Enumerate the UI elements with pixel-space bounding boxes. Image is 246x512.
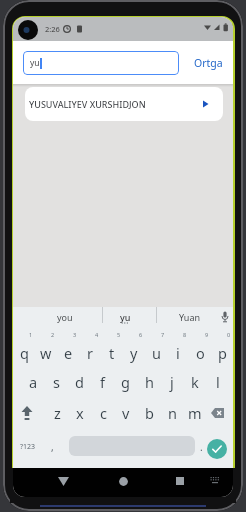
button[interactable]: q [13,339,35,366]
button[interactable]: p [211,339,233,366]
button[interactable]: you [33,309,96,324]
staticText: a [29,372,38,392]
button[interactable] [113,471,133,491]
button[interactable]: x [69,399,91,426]
staticText: 7 [161,331,165,338]
staticText: f [100,372,105,392]
staticText: p [218,343,227,363]
staticText: z [54,403,61,423]
staticText: o [196,343,205,363]
button[interactable]: u [145,339,167,366]
staticText: yu [30,57,40,69]
button[interactable]: e [57,339,79,366]
staticText: q [20,343,29,363]
button[interactable]: v [115,399,137,426]
button[interactable]: a [22,368,44,395]
button[interactable]: c [92,399,114,426]
staticText: s [53,372,60,392]
staticText: e [64,343,73,363]
button[interactable] [170,471,190,491]
staticText: m [188,403,202,423]
button[interactable]: i [167,339,189,366]
button[interactable] [53,471,73,491]
button[interactable]: . [195,433,207,460]
button[interactable]: ?123 [15,433,41,460]
button[interactable]: j [161,368,183,395]
staticText: ?123 [20,442,36,452]
button[interactable]: s [45,368,67,395]
staticText: you [57,311,73,323]
button[interactable]: k [184,368,206,395]
staticText: i [176,343,180,363]
staticText: w [40,343,52,363]
button[interactable]: r [79,339,101,366]
button[interactable]: o [189,339,211,366]
staticText: y [130,343,138,363]
staticText: c [100,403,107,423]
staticText: b [145,403,154,423]
staticText: k [191,372,199,392]
staticText: 5 [117,331,121,338]
button[interactable]: yu [105,309,145,324]
staticText: 2 [51,331,55,338]
staticText: v [122,403,130,423]
staticText: h [145,372,154,392]
button[interactable]: w [35,339,57,366]
staticText: yu [120,311,131,323]
button[interactable] [207,439,227,459]
staticText: l [216,372,220,392]
staticText: Yuan [179,311,200,323]
staticText: Ortga [194,56,223,70]
staticText: x [76,403,84,423]
button[interactable]: yu [23,51,179,75]
staticText: . [200,440,203,454]
button[interactable]: t [101,339,123,366]
button[interactable]: l [207,368,229,395]
staticText: d [75,372,84,392]
staticText: g [121,372,130,392]
button[interactable]: n [161,399,183,426]
button[interactable]: d [68,368,90,395]
staticText: 3 [73,331,77,338]
staticText: u [152,343,161,363]
button[interactable] [220,311,230,323]
staticText: t [109,343,115,363]
button[interactable]: y [123,339,145,366]
staticText: 2:26 [45,24,60,34]
staticText: 6 [139,331,143,338]
button[interactable]: f [91,368,113,395]
staticText: n [168,403,177,423]
button[interactable]: h [138,368,160,395]
staticText: r [87,343,93,363]
button[interactable]: m [184,399,206,426]
staticText: 4 [95,331,99,338]
button[interactable]: Ortga [188,51,228,75]
staticText: , [51,440,54,454]
button[interactable]: b [138,399,160,426]
button[interactable]: z [46,399,68,426]
staticText: 1 [29,331,33,338]
button[interactable]: YUSUVALIYEV XURSHIDJON [25,87,223,121]
staticText: 9 [205,331,209,338]
button[interactable] [206,399,230,426]
staticText: 0 [227,331,231,338]
staticText: j [170,372,174,392]
staticText: 8 [183,331,187,338]
staticText: YUSUVALIYEV XURSHIDJON [29,98,146,110]
button[interactable] [15,399,39,426]
button[interactable]: g [114,368,136,395]
button[interactable]: , [45,433,59,460]
button[interactable]: Yuan [161,309,217,324]
